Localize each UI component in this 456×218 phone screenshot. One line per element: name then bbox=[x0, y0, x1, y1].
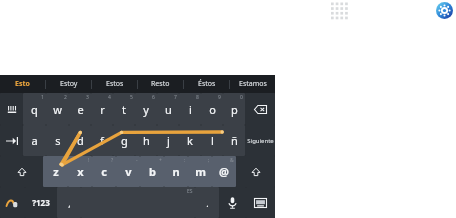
button[interactable]: ! bbox=[68, 156, 92, 187]
staticText: 0 bbox=[240, 94, 243, 101]
staticText: ñ bbox=[231, 133, 238, 148]
button[interactable]: ? bbox=[92, 156, 116, 187]
button[interactable]: . bbox=[195, 187, 219, 218]
button[interactable]: - bbox=[116, 156, 140, 187]
button[interactable]: 1 bbox=[23, 93, 46, 125]
staticText: 7 bbox=[174, 94, 177, 101]
staticText: c bbox=[101, 164, 107, 179]
staticText: x bbox=[77, 164, 84, 179]
button[interactable]: Switch keyboard bbox=[246, 187, 275, 218]
staticText: 2 bbox=[64, 94, 67, 101]
button[interactable]: Estos bbox=[92, 75, 137, 93]
button[interactable]: 5 bbox=[113, 93, 135, 125]
staticText: 8 bbox=[196, 94, 199, 101]
button[interactable]: a bbox=[23, 125, 46, 156]
button[interactable]: , bbox=[57, 187, 81, 218]
button[interactable]: 0 bbox=[223, 93, 245, 125]
button[interactable]: 7 bbox=[157, 93, 179, 125]
staticText: : bbox=[184, 157, 186, 164]
button[interactable]: Shift bbox=[236, 156, 275, 187]
button[interactable]: Voice input bbox=[219, 187, 246, 218]
staticText: . bbox=[206, 197, 209, 209]
staticText: s bbox=[55, 133, 61, 148]
button[interactable]: & bbox=[212, 156, 236, 187]
staticText: 6 bbox=[152, 94, 155, 101]
button[interactable]: Resto bbox=[138, 75, 183, 93]
staticText: Éstos bbox=[198, 79, 216, 89]
staticText: v bbox=[125, 164, 132, 179]
staticText: n bbox=[172, 164, 180, 179]
staticText: k bbox=[187, 133, 193, 148]
staticText: t bbox=[122, 102, 126, 117]
staticText: f bbox=[100, 133, 104, 148]
staticText: 1 bbox=[41, 94, 44, 101]
staticText: e bbox=[77, 102, 84, 117]
button[interactable]: k bbox=[179, 125, 201, 156]
staticText: 9 bbox=[218, 94, 221, 101]
button[interactable]: g bbox=[113, 125, 135, 156]
staticText: y bbox=[143, 102, 149, 117]
staticText: a bbox=[31, 133, 38, 148]
staticText: l bbox=[211, 133, 214, 148]
staticText: Siguiente bbox=[247, 137, 274, 145]
staticText: p bbox=[231, 102, 238, 117]
button[interactable]: Apps bbox=[328, 0, 354, 18]
button[interactable]: 8 bbox=[179, 93, 201, 125]
staticText: Resto bbox=[151, 79, 170, 89]
button[interactable]: 2 bbox=[46, 93, 69, 125]
button[interactable]: ñ bbox=[223, 125, 245, 156]
staticText: 5 bbox=[130, 94, 133, 101]
staticText: 4 bbox=[108, 94, 111, 101]
button[interactable]: ~ bbox=[43, 156, 68, 187]
button[interactable]: : bbox=[164, 156, 188, 187]
button[interactable]: Backspace bbox=[245, 93, 275, 125]
button[interactable]: ?123 bbox=[25, 187, 57, 218]
button[interactable]: + bbox=[140, 156, 164, 187]
button[interactable]: Esto bbox=[0, 75, 45, 93]
button[interactable]: l bbox=[201, 125, 223, 156]
staticText: i bbox=[189, 102, 192, 117]
staticText: ~ bbox=[63, 157, 66, 164]
button[interactable]: d bbox=[69, 125, 91, 156]
staticText: 3 bbox=[86, 94, 89, 101]
button[interactable]: 3 bbox=[69, 93, 91, 125]
button[interactable]: Estoy bbox=[46, 75, 91, 93]
staticText: o bbox=[209, 102, 216, 117]
button[interactable]: Éstos bbox=[184, 75, 229, 93]
staticText: Estoy bbox=[60, 79, 78, 89]
staticText: Estos bbox=[106, 79, 124, 89]
staticText: j bbox=[167, 133, 170, 148]
staticText: m bbox=[195, 164, 206, 179]
button[interactable]: Input language bbox=[0, 93, 23, 125]
button[interactable]: Gesture typing bbox=[0, 187, 25, 218]
button[interactable]: h bbox=[135, 125, 157, 156]
button[interactable]: 4 bbox=[91, 93, 113, 125]
staticText: h bbox=[143, 133, 150, 148]
button[interactable]: Shift bbox=[0, 156, 43, 187]
button[interactable]: s bbox=[46, 125, 69, 156]
button[interactable]: Settings bbox=[436, 2, 453, 19]
staticText: u bbox=[165, 102, 172, 117]
button[interactable]: 6 bbox=[135, 93, 157, 125]
button[interactable]: j bbox=[157, 125, 179, 156]
button[interactable]: f bbox=[91, 125, 113, 156]
staticText: @ bbox=[219, 164, 229, 179]
button[interactable]: Estamos bbox=[230, 75, 275, 93]
staticText: Estamos bbox=[239, 79, 267, 89]
staticText: Esto bbox=[15, 79, 30, 89]
staticText: z bbox=[53, 164, 59, 179]
staticText: ? bbox=[111, 157, 114, 164]
button[interactable]: 9 bbox=[201, 93, 223, 125]
staticText: ?123 bbox=[32, 197, 50, 208]
staticText: ES bbox=[187, 188, 193, 195]
button[interactable]: Siguiente bbox=[245, 125, 275, 156]
staticText: b bbox=[149, 164, 156, 179]
button[interactable]: ; bbox=[188, 156, 212, 187]
staticText: & bbox=[230, 157, 234, 164]
staticText: ; bbox=[208, 157, 210, 164]
staticText: g bbox=[121, 133, 128, 148]
button[interactable]: Tab bbox=[0, 125, 23, 156]
staticText: r bbox=[100, 102, 105, 117]
staticText: q bbox=[31, 102, 38, 117]
